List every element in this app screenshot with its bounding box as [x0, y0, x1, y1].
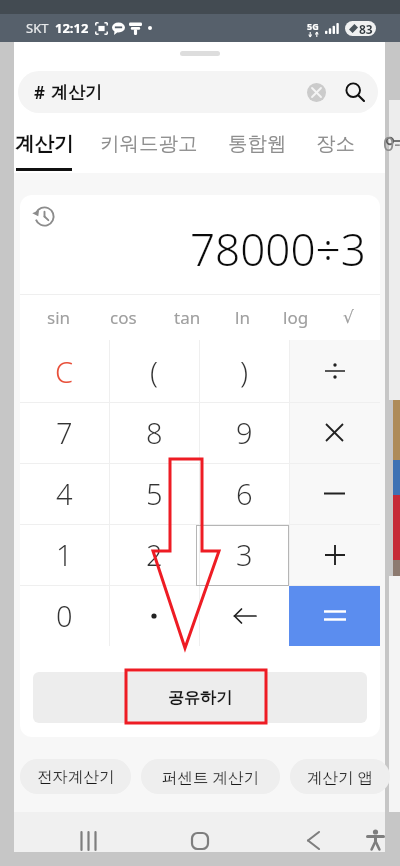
- button[interactable]: (: [109, 340, 199, 402]
- button[interactable]: 2: [109, 524, 199, 585]
- button[interactable]: cos: [97, 294, 149, 340]
- staticText: 0: [56, 596, 73, 635]
- staticText: 78000÷3: [190, 219, 366, 279]
- button[interactable]: sin: [33, 294, 85, 340]
- button[interactable]: 8: [109, 402, 199, 463]
- staticText: 9: [236, 413, 253, 452]
- button[interactable]: Home: [178, 829, 222, 852]
- staticText: tan: [174, 306, 201, 329]
- staticText: 1: [56, 535, 73, 574]
- staticText: 4: [56, 474, 73, 513]
- staticText: 퍼센트 계산기: [162, 766, 260, 787]
- staticText: SKT: [26, 19, 49, 37]
- button[interactable]: C: [20, 340, 109, 402]
- staticText: ): [240, 352, 249, 391]
- button[interactable]: Recents: [66, 829, 110, 852]
- staticText: 5: [146, 474, 163, 513]
- staticText: 전자계산기: [37, 767, 115, 787]
- staticText: 83: [359, 21, 373, 36]
- button[interactable]: 계산기: [10, 119, 78, 167]
- button[interactable]: #: [18, 71, 378, 113]
- button[interactable]: 장소: [305, 119, 365, 167]
- staticText: C: [55, 352, 74, 391]
- staticText: 6: [236, 474, 253, 513]
- button[interactable]: 계산기 앱: [290, 759, 390, 794]
- button[interactable]: Back: [291, 829, 335, 852]
- button[interactable]: 통합웹: [217, 119, 297, 167]
- button[interactable]: ln: [216, 294, 268, 340]
- staticText: #: [34, 81, 45, 104]
- staticText: cos: [110, 306, 137, 329]
- staticText: 통합웹: [228, 131, 287, 156]
- staticText: (: [150, 352, 159, 391]
- button[interactable]: log: [270, 294, 322, 340]
- staticText: 계산기 앱: [307, 766, 374, 787]
- button[interactable]: [109, 585, 199, 646]
- staticText: 계산기: [15, 131, 74, 156]
- button[interactable]: [289, 585, 380, 646]
- button[interactable]: 3: [199, 524, 289, 585]
- staticText: log: [283, 306, 309, 329]
- button[interactable]: 4: [20, 463, 109, 524]
- button[interactable]: Accessibility: [353, 827, 397, 852]
- button[interactable]: 0-: [374, 119, 400, 167]
- button[interactable]: 7: [20, 402, 109, 463]
- button[interactable]: 9: [199, 402, 289, 463]
- staticText: 5G: [307, 20, 319, 32]
- button[interactable]: 퍼센트 계산기: [141, 759, 280, 794]
- button[interactable]: √: [322, 294, 374, 340]
- button[interactable]: Search: [343, 80, 367, 104]
- button[interactable]: History: [30, 202, 58, 230]
- staticText: ln: [235, 306, 250, 329]
- button[interactable]: [289, 340, 380, 402]
- button[interactable]: 1: [20, 524, 109, 585]
- button[interactable]: tan: [161, 294, 213, 340]
- button[interactable]: [289, 402, 380, 463]
- staticText: 0-: [383, 130, 400, 157]
- button[interactable]: 키워드광고: [91, 119, 207, 167]
- staticText: sin: [47, 306, 71, 329]
- button[interactable]: [289, 524, 380, 585]
- button[interactable]: 0: [20, 585, 109, 646]
- staticText: 계산기: [51, 82, 102, 103]
- button[interactable]: Clear: [307, 83, 326, 102]
- button[interactable]: ): [199, 340, 289, 402]
- staticText: 3: [236, 535, 253, 574]
- button[interactable]: 6: [199, 463, 289, 524]
- button[interactable]: 5: [109, 463, 199, 524]
- button[interactable]: [199, 585, 289, 646]
- staticText: 장소: [316, 131, 355, 156]
- staticText: 공유하기: [168, 688, 232, 708]
- staticText: 2: [146, 535, 163, 574]
- staticText: 키워드광고: [100, 131, 198, 156]
- button[interactable]: 공유하기: [33, 672, 367, 723]
- staticText: 12:12: [55, 19, 89, 37]
- staticText: 7: [56, 413, 73, 452]
- button[interactable]: [289, 463, 380, 524]
- staticText: √: [343, 307, 354, 327]
- button[interactable]: 전자계산기: [20, 759, 131, 794]
- staticText: 8: [146, 413, 163, 452]
